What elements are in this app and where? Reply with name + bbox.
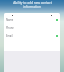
staticText: Name <box>6 18 56 22</box>
staticText: Ability to add new contact <box>13 1 52 5</box>
staticText: Phone <box>6 26 58 30</box>
button[interactable]: Phone <box>4 26 60 34</box>
staticText: information <box>23 5 41 9</box>
button[interactable]: Email <box>4 34 60 42</box>
button[interactable]: Name <box>4 18 60 26</box>
staticText: Email <box>6 34 56 38</box>
